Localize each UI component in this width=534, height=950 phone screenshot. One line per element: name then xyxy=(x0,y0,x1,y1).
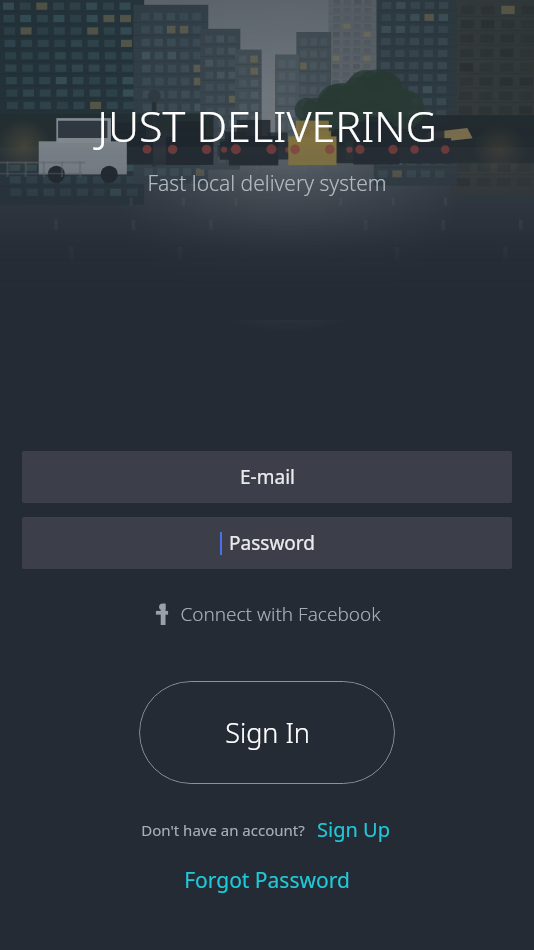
button[interactable]: Sign In xyxy=(139,681,395,784)
staticText: E-mail xyxy=(240,464,295,490)
staticText: Forgot Password xyxy=(184,866,350,895)
button[interactable]: Forgot Password xyxy=(176,863,358,898)
staticText: JUST DELIVERING xyxy=(97,96,437,155)
staticText: Sign In xyxy=(225,714,310,751)
staticText: Fast local delivery system xyxy=(147,169,387,198)
staticText: Don't have an account? xyxy=(141,820,305,840)
button[interactable]: Password xyxy=(22,517,512,569)
button[interactable]: Sign Up xyxy=(313,814,394,845)
staticText: Password xyxy=(229,530,315,556)
button[interactable]: Connect with Facebook xyxy=(144,595,391,633)
button[interactable]: E-mail xyxy=(22,451,512,503)
staticText: Connect with Facebook xyxy=(180,601,381,627)
staticText: Sign Up xyxy=(317,816,390,843)
